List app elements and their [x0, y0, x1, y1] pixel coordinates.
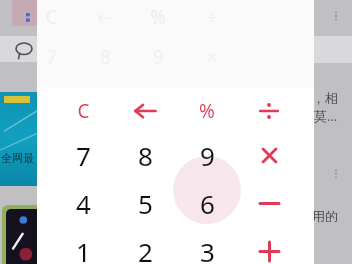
button[interactable]: 2: [122, 228, 168, 264]
staticText: 7: [76, 138, 91, 173]
other: Plus: [260, 242, 279, 261]
staticText: 全网最: [1, 151, 34, 165]
staticText: 8: [100, 44, 111, 70]
staticText: 8: [138, 138, 153, 173]
staticText: 莫…: [314, 107, 338, 125]
staticText: C: [77, 98, 90, 124]
staticText: 7: [46, 44, 57, 70]
button[interactable]: %: [184, 88, 230, 134]
button[interactable]: 4: [60, 180, 106, 226]
button[interactable]: Multiply: [246, 132, 292, 178]
staticText: C: [45, 4, 58, 30]
button[interactable]: 9: [184, 132, 230, 178]
staticText: 6: [153, 92, 164, 118]
staticText: =: [207, 188, 218, 214]
staticText: 5: [138, 186, 153, 221]
other: Multiply: [261, 147, 278, 164]
button[interactable]: 7: [60, 132, 106, 178]
button[interactable]: More options: [330, 168, 342, 180]
other: Backspace: [133, 99, 157, 123]
staticText: 9: [200, 138, 215, 173]
button[interactable]: Comment: [16, 43, 32, 59]
button[interactable]: 3: [184, 228, 230, 264]
staticText: 4: [76, 186, 91, 221]
button[interactable]: 8: [122, 132, 168, 178]
staticText: 3: [200, 234, 215, 264]
staticText: %: [150, 4, 166, 30]
staticText: 6: [200, 186, 215, 221]
button[interactable]: 6: [184, 180, 230, 226]
button[interactable]: C: [60, 88, 106, 134]
button[interactable]: Minus: [246, 180, 292, 226]
button[interactable]: Plus: [246, 228, 292, 264]
button[interactable]: 1: [60, 228, 106, 264]
other: Minus: [260, 194, 279, 213]
staticText: 2: [138, 234, 153, 264]
staticText: −: [207, 92, 218, 118]
staticText: %: [199, 98, 215, 124]
button[interactable]: More options: [330, 10, 342, 22]
other: Divide: [259, 101, 279, 121]
button[interactable]: Backspace: [122, 88, 168, 134]
staticText: ，相: [312, 90, 338, 106]
staticText: 用的: [312, 208, 338, 224]
button[interactable]: Divide: [246, 88, 292, 134]
button[interactable]: 5: [122, 180, 168, 226]
staticText: 9: [153, 44, 164, 70]
staticText: 1: [76, 234, 91, 264]
staticText: +: [207, 140, 218, 166]
